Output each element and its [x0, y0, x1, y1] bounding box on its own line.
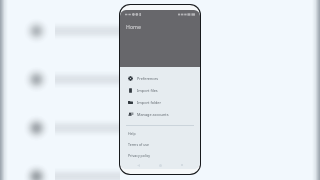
button[interactable]: Back — [134, 161, 142, 169]
button[interactable]: Home — [156, 161, 164, 169]
button[interactable]: Terms of use — [120, 139, 200, 150]
staticText: Terms of use — [128, 142, 150, 147]
button[interactable]: Help — [120, 128, 200, 139]
button[interactable]: Preferences — [120, 72, 200, 84]
button[interactable]: Privacy policy — [120, 150, 200, 161]
button[interactable]: Import files — [120, 84, 200, 96]
button[interactable]: Import folder — [120, 96, 200, 108]
button[interactable]: Manage accounts — [120, 108, 200, 120]
staticText: Help — [128, 131, 136, 136]
staticText: Privacy policy — [128, 153, 151, 158]
staticText: Manage accounts — [137, 112, 169, 117]
staticText: Home — [126, 23, 141, 30]
button[interactable]: Recents — [178, 161, 186, 169]
staticText: Preferences — [137, 76, 159, 81]
staticText: Import folder — [137, 100, 162, 105]
staticText: Import files — [137, 88, 158, 93]
